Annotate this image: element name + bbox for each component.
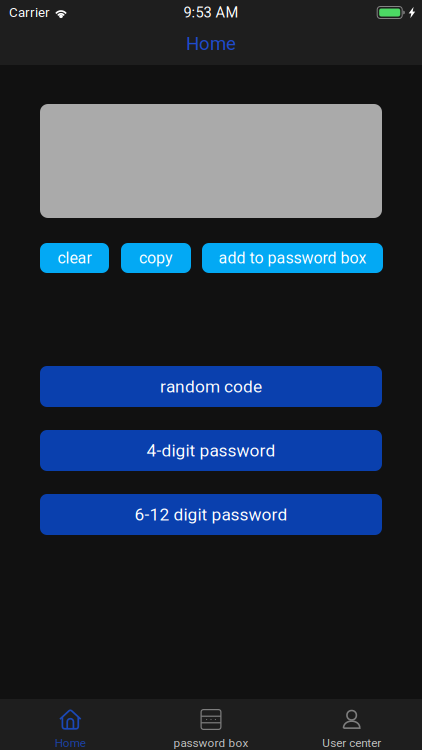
staticText: Home: [186, 33, 236, 54]
button[interactable]: copy: [121, 243, 191, 273]
button[interactable]: add to password box: [202, 243, 383, 273]
staticText: 9:53 AM: [183, 4, 238, 21]
button[interactable]: User center: [281, 699, 422, 750]
staticText: 6-12 digit password: [134, 504, 287, 525]
staticText: copy: [139, 249, 173, 267]
staticText: Carrier: [9, 5, 50, 20]
button[interactable]: 4-digit password: [40, 430, 382, 471]
button[interactable]: Home: [0, 699, 141, 750]
staticText: User center: [322, 736, 381, 750]
staticText: add to password box: [218, 249, 366, 267]
button[interactable]: 6-12 digit password: [40, 494, 382, 535]
staticText: Home: [55, 736, 86, 750]
staticText: clear: [57, 249, 91, 267]
staticText: 4-digit password: [146, 440, 275, 461]
button[interactable]: Home: [0, 25, 422, 62]
button[interactable]: random code: [40, 366, 382, 407]
staticText: random code: [160, 376, 262, 397]
button[interactable]: password box: [141, 699, 281, 750]
staticText: password box: [173, 736, 248, 750]
button[interactable]: clear: [40, 243, 109, 273]
